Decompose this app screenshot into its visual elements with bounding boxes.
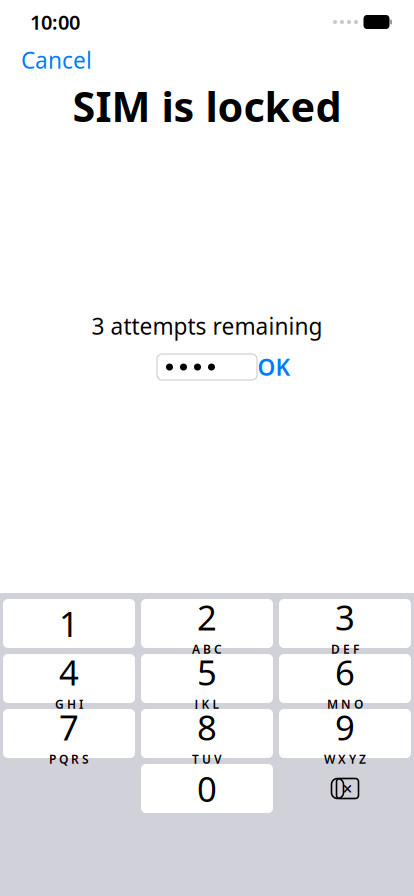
button[interactable]: 0 bbox=[141, 764, 273, 813]
staticText: SIM is locked bbox=[72, 79, 341, 133]
staticText: W X Y Z bbox=[324, 751, 366, 767]
staticText: OK bbox=[257, 352, 290, 382]
staticText: 8 bbox=[197, 704, 217, 750]
staticText: J K L bbox=[194, 696, 219, 712]
staticText: 4 bbox=[59, 649, 79, 695]
staticText: 3 attempts remaining bbox=[91, 311, 322, 341]
staticText: 3 bbox=[335, 594, 355, 640]
staticText: × bbox=[342, 777, 352, 800]
button[interactable]: 5 bbox=[141, 654, 273, 703]
button[interactable]: 6 bbox=[279, 654, 411, 703]
staticText: G H I bbox=[55, 696, 83, 712]
button[interactable]: 3 bbox=[279, 599, 411, 648]
staticText: 9 bbox=[335, 704, 355, 750]
staticText: Cancel bbox=[21, 45, 92, 75]
staticText: 7 bbox=[59, 704, 79, 750]
staticText: P Q R S bbox=[49, 751, 89, 767]
button[interactable]: 7 bbox=[3, 709, 135, 758]
staticText: 10:00 bbox=[30, 9, 80, 35]
button[interactable]: OK bbox=[257, 354, 291, 380]
button[interactable]: 8 bbox=[141, 709, 273, 758]
button[interactable]: Delete bbox=[279, 764, 411, 813]
staticText: T U V bbox=[192, 751, 222, 767]
staticText: 1 bbox=[59, 600, 79, 646]
staticText: A B C bbox=[192, 641, 222, 657]
button[interactable]: 4 bbox=[3, 654, 135, 703]
staticText: M N O bbox=[327, 696, 363, 712]
button[interactable]: Cancel bbox=[15, 39, 98, 81]
staticText: 0 bbox=[197, 765, 217, 811]
button[interactable]: 2 bbox=[141, 599, 273, 648]
staticText: 5 bbox=[197, 649, 217, 695]
button[interactable]: 9 bbox=[279, 709, 411, 758]
button[interactable]: 1 bbox=[3, 599, 135, 648]
staticText: D E F bbox=[331, 641, 359, 657]
staticText: 2 bbox=[197, 594, 217, 640]
staticText: 6 bbox=[335, 649, 355, 695]
